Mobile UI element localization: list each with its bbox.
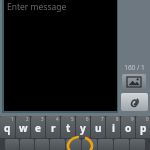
button[interactable]: [20, 139, 34, 150]
staticText: 160 / 1: [124, 63, 145, 72]
button[interactable]: 0: [136, 116, 150, 138]
staticText: q: [4, 121, 11, 135]
button[interactable]: 4: [46, 116, 60, 138]
button[interactable]: [35, 139, 49, 150]
button[interactable]: [82, 139, 97, 150]
button[interactable]: Enter message: [2, 0, 118, 113]
staticText: u: [95, 121, 102, 135]
staticText: y: [80, 121, 86, 135]
button[interactable]: 1: [0, 116, 15, 138]
staticText: 8: [116, 116, 119, 122]
button[interactable]: 9: [121, 116, 135, 138]
staticText: w: [19, 121, 28, 135]
staticText: t: [66, 121, 71, 135]
button[interactable]: Insert image: [122, 74, 146, 89]
staticText: 1: [11, 116, 14, 122]
staticText: 7: [101, 116, 104, 122]
staticText: 2: [26, 116, 29, 122]
button[interactable]: 8: [106, 116, 120, 138]
button[interactable]: 3: [31, 116, 45, 138]
button[interactable]: 6: [76, 116, 90, 138]
staticText: 0: [146, 116, 149, 122]
staticText: p: [140, 121, 147, 135]
staticText: 5: [71, 116, 74, 122]
button[interactable]: 5: [61, 116, 75, 138]
staticText: 6: [86, 116, 89, 122]
button[interactable]: [66, 139, 81, 150]
staticText: e: [35, 121, 41, 135]
staticText: 9: [131, 116, 134, 122]
staticText: i: [112, 121, 115, 135]
staticText: o: [125, 121, 132, 135]
staticText: 4: [56, 116, 59, 122]
button[interactable]: [114, 139, 129, 150]
staticText: Enter message: [7, 1, 67, 13]
staticText: r: [51, 121, 56, 135]
button[interactable]: [98, 139, 113, 150]
button[interactable]: [130, 139, 145, 150]
button[interactable]: [5, 139, 19, 150]
button[interactable]: Attach file: [121, 93, 148, 111]
button[interactable]: [50, 139, 65, 150]
button[interactable]: 7: [91, 116, 105, 138]
button[interactable]: 2: [16, 116, 30, 138]
staticText: 3: [41, 116, 44, 122]
